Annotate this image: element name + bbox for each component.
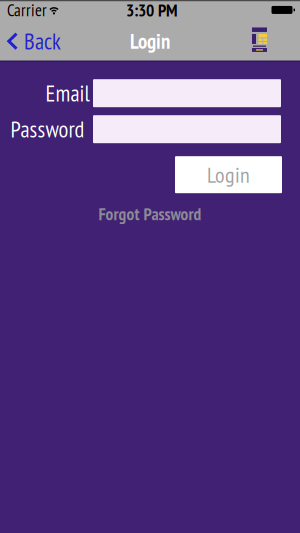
staticText: Carrier [7, 0, 47, 21]
staticText: Email [45, 78, 89, 108]
textField[interactable] [93, 78, 281, 108]
staticText: Back [24, 26, 61, 56]
staticText: 3:30 PM [126, 0, 178, 21]
staticText: Login [207, 160, 250, 189]
secureTextField[interactable] [93, 114, 281, 144]
staticText: Login [130, 28, 170, 54]
button[interactable]: Back [0, 25, 61, 54]
staticText: Password [10, 114, 84, 144]
staticText: Forgot Password [98, 203, 201, 225]
button[interactable]: Forgot Password [98, 203, 201, 225]
button[interactable]: Login [175, 156, 282, 193]
